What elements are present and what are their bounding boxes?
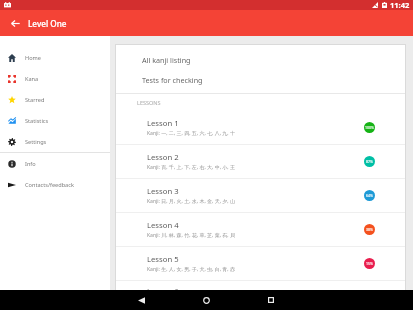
staticText: Lesson 2 (147, 152, 179, 162)
staticText: Lesson 5 (147, 254, 179, 264)
button[interactable]: Lesson 4 (116, 213, 405, 247)
staticText: 11:42 (390, 0, 410, 10)
button[interactable]: Home (0, 47, 110, 68)
staticText: Starred (25, 96, 45, 104)
staticText: Kanji: 生, 人, 女, 男, 子, 犬, 虫, 白, 青, 赤 (147, 266, 235, 273)
staticText: 87% (366, 159, 373, 164)
staticText: Statistics (25, 117, 49, 125)
button[interactable]: Info (0, 153, 110, 174)
staticText: Tests for checking (142, 75, 203, 85)
staticText: All kanji listing (142, 55, 191, 65)
button[interactable]: Settings (0, 131, 110, 152)
staticText: Lesson 1 (147, 118, 179, 128)
staticText: Home (25, 54, 41, 62)
button[interactable]: Kana (0, 68, 110, 89)
staticText: Kanji: 一, 二, 三, 四, 五, 六, 七, 八, 九, 十 (147, 130, 235, 137)
staticText: 64% (366, 193, 373, 198)
button[interactable]: Lesson 3 (116, 179, 405, 213)
staticText: Settings (25, 138, 47, 146)
button[interactable]: Starred (0, 89, 110, 110)
staticText: Lesson 6 (147, 286, 179, 296)
button[interactable]: Back (6, 14, 24, 32)
button[interactable]: All kanji listing (116, 50, 405, 70)
button[interactable]: Home (198, 292, 214, 308)
button[interactable]: Recent apps (263, 292, 279, 308)
staticText: 38% (366, 227, 373, 232)
staticText: Contacts/feedback (25, 181, 74, 189)
button[interactable]: Lesson 2 (116, 145, 405, 179)
button[interactable]: Lesson 1 (116, 111, 405, 145)
staticText: 15% (366, 261, 373, 266)
button[interactable]: Lesson 5 (116, 247, 405, 281)
staticText: Kanji: 川, 林, 森, 竹, 花, 草, 芝, 葉, 石, 貝 (147, 232, 235, 239)
staticText: Kanji: 日, 月, 火, 土, 水, 木, 金, 天, 夕, 山 (147, 198, 235, 205)
button[interactable]: Back (133, 292, 149, 308)
button[interactable]: Lesson 6 (116, 281, 405, 310)
button[interactable]: Tests for checking (116, 70, 405, 90)
button[interactable]: Statistics (0, 110, 110, 131)
staticText: LESSONS (137, 99, 161, 106)
staticText: 100% (365, 125, 374, 130)
staticText: Level One (28, 18, 67, 29)
staticText: Kanji: 右, 左, 名, 字, 村, 町, 村, 田, 力, 男 (147, 298, 235, 305)
button[interactable]: Contacts/feedback (0, 174, 110, 195)
staticText: Lesson 4 (147, 220, 179, 230)
staticText: Kanji: 百, 千, 上, 下, 左, 右, 大, 中, 小, 王 (147, 164, 235, 171)
staticText: Info (25, 160, 36, 168)
staticText: Lesson 3 (147, 186, 179, 196)
staticText: Kana (25, 75, 39, 83)
